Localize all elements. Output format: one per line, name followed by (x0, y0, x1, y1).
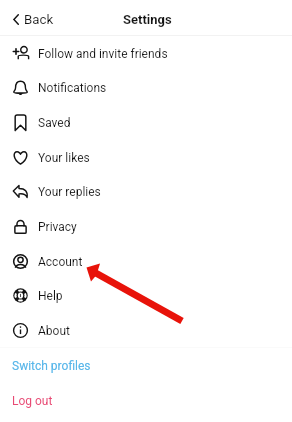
staticText: Saved (38, 116, 71, 130)
staticText: Follow and invite friends (38, 47, 168, 61)
button[interactable]: About (0, 313, 292, 348)
button[interactable]: Help (0, 278, 292, 313)
staticText: Your replies (38, 185, 101, 199)
staticText: Log out (12, 394, 53, 408)
staticText: Account (38, 255, 83, 269)
staticText: Help (38, 289, 63, 303)
staticText: Settings (123, 12, 172, 27)
staticText: Switch profiles (12, 359, 91, 373)
staticText: Your likes (38, 151, 90, 165)
button[interactable]: Follow and invite friends (0, 36, 292, 71)
button[interactable]: Privacy (0, 209, 292, 244)
button[interactable]: Log out (0, 383, 292, 418)
button[interactable]: Saved (0, 105, 292, 140)
button[interactable]: Notifications (0, 70, 292, 105)
staticText: Privacy (38, 220, 77, 234)
button[interactable]: Back (0, 10, 64, 32)
staticText: Back (24, 12, 54, 28)
staticText: About (38, 324, 70, 338)
staticText: Notifications (38, 81, 107, 95)
button[interactable]: Account (0, 244, 292, 279)
button[interactable]: Your replies (0, 174, 292, 209)
button[interactable]: Your likes (0, 140, 292, 175)
button[interactable]: Switch profiles (0, 348, 292, 383)
